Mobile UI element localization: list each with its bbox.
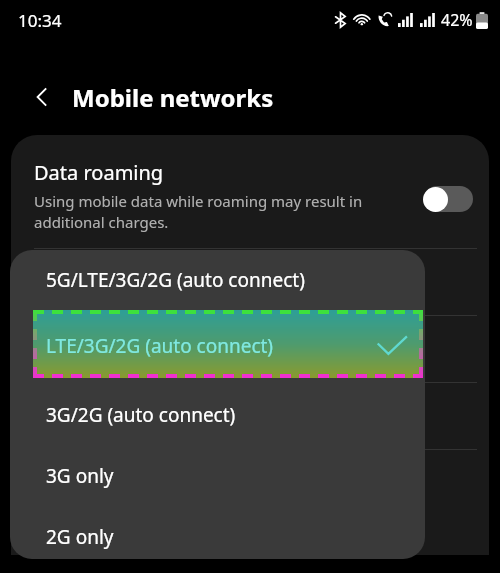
staticText: LTE/3G/2G (auto connect) bbox=[46, 333, 274, 359]
staticText: 3G only bbox=[46, 463, 114, 489]
button[interactable]: LTE/3G/2G (auto connect) bbox=[33, 310, 423, 378]
staticText: 5G/LTE/3G/2G (auto connect) bbox=[46, 267, 305, 293]
button[interactable]: 3G/2G (auto connect) bbox=[10, 386, 425, 444]
staticText: 10:34 bbox=[18, 9, 62, 32]
button[interactable]: Data roaming toggle bbox=[418, 182, 478, 216]
staticText: Data roaming bbox=[34, 159, 164, 186]
button[interactable] bbox=[11, 450, 489, 516]
button[interactable] bbox=[11, 249, 489, 315]
button[interactable]: Back bbox=[20, 75, 64, 119]
button[interactable] bbox=[11, 383, 489, 449]
button[interactable]: 5G/LTE/3G/2G (auto connect) bbox=[10, 250, 425, 310]
staticText: 42% bbox=[441, 9, 473, 31]
staticText: Using mobile data while roaming may resu… bbox=[34, 191, 394, 233]
button[interactable] bbox=[11, 316, 489, 382]
staticText: 3G/2G (auto connect) bbox=[46, 402, 236, 428]
button[interactable]: 2G only bbox=[10, 508, 425, 559]
staticText: Mobile networks bbox=[72, 81, 274, 114]
button[interactable]: Data roaming bbox=[11, 135, 489, 248]
button[interactable]: 3G only bbox=[10, 447, 425, 505]
staticText: 2G only bbox=[46, 524, 114, 550]
